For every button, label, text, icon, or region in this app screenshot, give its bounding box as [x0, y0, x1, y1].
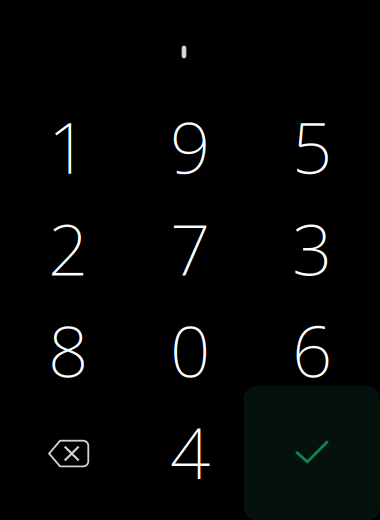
- staticText: 5: [292, 99, 332, 193]
- staticText: 7: [170, 201, 210, 295]
- button[interactable]: 6: [251, 299, 373, 401]
- button[interactable]: 2: [7, 197, 129, 299]
- staticText: 8: [48, 303, 88, 397]
- button[interactable]: 5: [251, 96, 373, 197]
- staticText: 3: [292, 201, 332, 295]
- staticText: 2: [48, 201, 88, 295]
- staticText: 0: [170, 303, 210, 397]
- button[interactable]: 9: [129, 96, 251, 197]
- staticText: 1: [48, 99, 88, 193]
- button[interactable]: 3: [251, 197, 373, 299]
- staticText: 6: [292, 303, 332, 397]
- button[interactable]: 7: [129, 197, 251, 299]
- button[interactable]: Confirm: [251, 401, 373, 502]
- staticText: 9: [170, 99, 210, 193]
- staticText: 4: [170, 405, 210, 498]
- button[interactable]: 1: [7, 96, 129, 197]
- button[interactable]: 0: [129, 299, 251, 401]
- button[interactable]: 4: [129, 401, 251, 502]
- button[interactable]: Delete: [7, 401, 129, 502]
- button[interactable]: 8: [7, 299, 129, 401]
